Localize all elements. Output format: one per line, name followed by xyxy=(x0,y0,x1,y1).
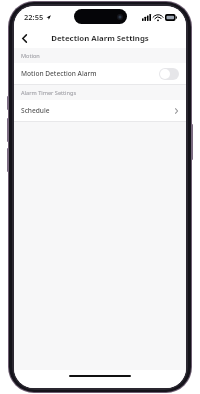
button[interactable]: Motion Detection Alarm xyxy=(14,63,186,84)
staticText: 22:55 xyxy=(24,12,44,22)
button[interactable]: Back xyxy=(14,28,34,48)
button[interactable]: Motion Detection Alarm toggle, off xyxy=(159,68,179,80)
staticText: Motion Detection Alarm xyxy=(21,69,97,78)
staticText: Detection Alarm Settings xyxy=(51,33,149,44)
staticText: Motion xyxy=(21,52,40,60)
staticText: Alarm Timer Settings xyxy=(21,89,77,97)
button[interactable]: Schedule xyxy=(14,100,186,121)
staticText: Schedule xyxy=(21,106,50,115)
